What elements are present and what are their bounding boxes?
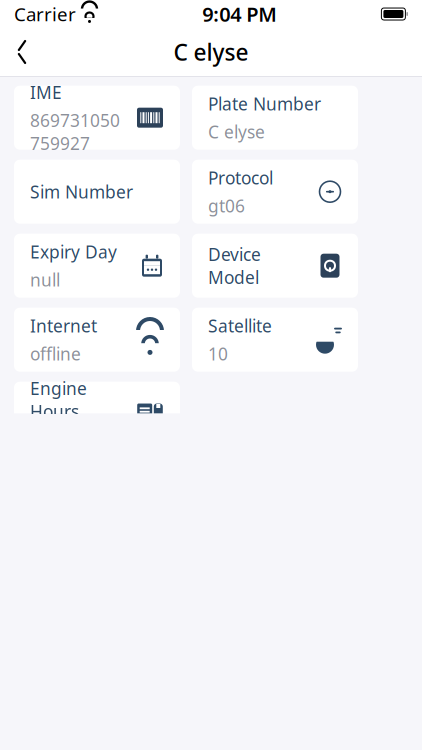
staticText: C elyse: [208, 120, 265, 143]
button[interactable]: Internet: [14, 308, 180, 372]
button[interactable]: Sim Number: [14, 160, 180, 224]
button[interactable]: IME: [14, 86, 180, 150]
staticText: C elyse: [173, 37, 248, 67]
button[interactable]: Protocol: [192, 160, 358, 224]
staticText: Engine Hours: [30, 377, 87, 423]
button[interactable]: Plate Number: [192, 86, 358, 150]
button[interactable]: Engine Hours: [14, 382, 180, 446]
staticText: Protocol: [208, 166, 273, 189]
staticText: 10: [208, 342, 228, 365]
button[interactable]: Expiry Day: [14, 234, 180, 298]
staticText: Carrier: [14, 2, 76, 26]
button[interactable]: Device Model: [192, 234, 358, 298]
staticText: 9:04 PM: [202, 1, 277, 27]
staticText: null: [30, 268, 60, 291]
button[interactable]: Back: [0, 30, 44, 74]
staticText: Expiry Day: [30, 240, 117, 263]
staticText: gt06: [208, 194, 245, 217]
staticText: Internet: [30, 314, 97, 337]
staticText: 869731050759927: [30, 109, 120, 155]
staticText: Sim Number: [30, 180, 133, 203]
staticText: IME: [30, 81, 62, 104]
staticText: Plate Number: [208, 92, 321, 115]
staticText: Satellite: [208, 314, 272, 337]
button[interactable]: Satellite: [192, 308, 358, 372]
staticText: Device Model: [208, 243, 261, 289]
staticText: offline: [30, 342, 81, 365]
